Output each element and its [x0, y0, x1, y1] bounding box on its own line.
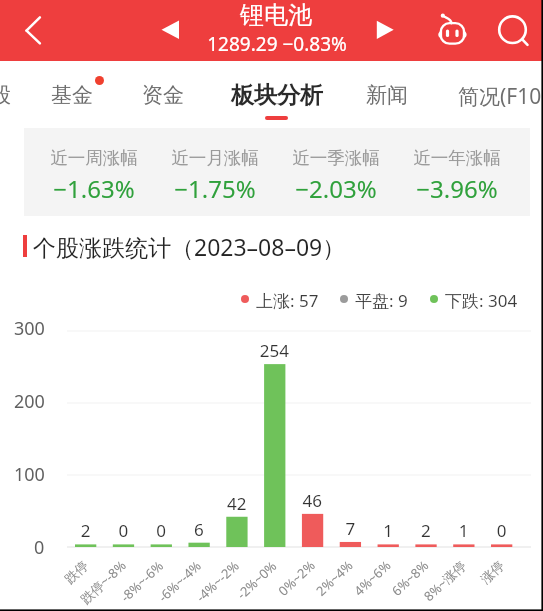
- button[interactable]: 股: [0, 62, 23, 118]
- staticText: 资金: [142, 82, 184, 108]
- staticText: 1289.29 −0.83%: [11, 31, 543, 57]
- button[interactable]: 基金: [39, 62, 105, 118]
- staticText: 上涨: 57: [256, 289, 319, 312]
- staticText: 板块分析: [231, 81, 323, 110]
- button[interactable]: 近一周涨幅: [33, 143, 155, 205]
- staticText: 近一月涨幅: [154, 147, 276, 169]
- staticText: −3.96%: [396, 172, 518, 205]
- button[interactable]: 资金: [130, 62, 196, 118]
- staticText: 近一季涨幅: [275, 147, 397, 169]
- staticText: 新闻: [366, 82, 408, 108]
- button[interactable]: 近一年涨幅: [396, 143, 518, 205]
- staticText: −2.03%: [275, 172, 397, 205]
- staticText: 简况(F10): [458, 82, 543, 111]
- staticText: 锂电池: [9, 0, 543, 30]
- staticText: −1.63%: [33, 172, 155, 205]
- staticText: −1.75%: [154, 172, 276, 205]
- staticText: 基金: [51, 82, 93, 108]
- staticText: 近一周涨幅: [33, 147, 155, 169]
- button[interactable]: 上涨: 57: [241, 288, 304, 312]
- staticText: 个股涨跌统计（2023–08–09）: [33, 231, 346, 262]
- button[interactable]: 近一月涨幅: [154, 143, 276, 205]
- button[interactable]: AI assistant: [431, 11, 473, 53]
- button[interactable]: Search: [491, 8, 535, 52]
- button[interactable]: 平盘: 9: [340, 288, 393, 312]
- button[interactable]: 近一季涨幅: [275, 143, 397, 205]
- staticText: 平盘: 9: [355, 289, 408, 312]
- button[interactable]: Previous sector: [152, 10, 190, 48]
- button[interactable]: 简况(F10): [446, 62, 543, 118]
- staticText: 下跌: 304: [445, 289, 518, 312]
- button[interactable]: Next sector: [365, 10, 403, 48]
- button[interactable]: Back: [4, 8, 48, 52]
- button[interactable]: 板块分析: [219, 62, 335, 118]
- button[interactable]: 下跌: 304: [430, 288, 503, 312]
- staticText: 股: [0, 82, 11, 108]
- button[interactable]: 新闻: [354, 62, 422, 118]
- staticText: 近一年涨幅: [396, 147, 518, 169]
